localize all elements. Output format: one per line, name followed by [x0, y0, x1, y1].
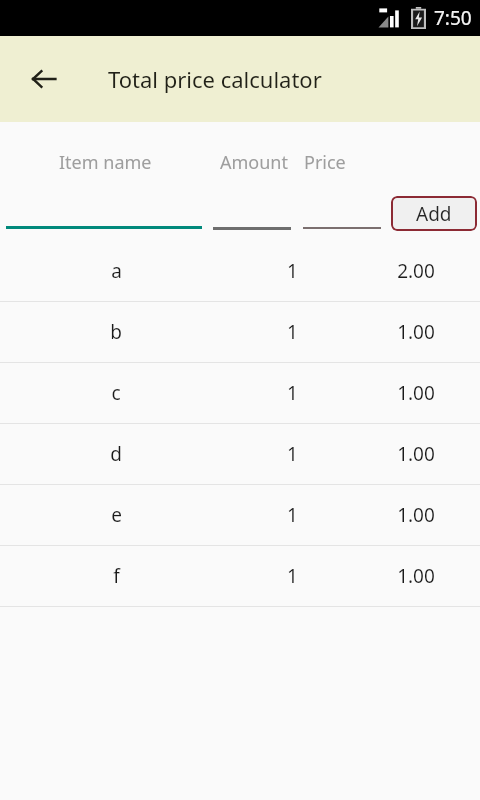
staticText: 1 [287, 319, 298, 345]
staticText: c [111, 380, 121, 406]
button[interactable]: Back [20, 55, 68, 103]
staticText: 1 [287, 258, 298, 284]
button[interactable]: c [0, 363, 480, 423]
staticText: 1.00 [397, 380, 435, 406]
staticText: d [110, 441, 122, 467]
staticText: Add [416, 201, 452, 227]
staticText: 1.00 [397, 441, 435, 467]
staticText: 1.00 [397, 319, 435, 345]
staticText: a [111, 258, 122, 284]
staticText: 1 [287, 563, 298, 589]
staticText: 1 [287, 502, 298, 528]
button[interactable]: e [0, 485, 480, 545]
staticText: 1 [287, 441, 298, 467]
staticText: Total price calculator [108, 64, 322, 94]
staticText: 1.00 [397, 502, 435, 528]
staticText: b [110, 319, 122, 345]
staticText: 1.00 [397, 563, 435, 589]
button[interactable]: Add [391, 196, 477, 231]
button[interactable]: b [0, 302, 480, 362]
staticText: Item name [59, 150, 152, 175]
staticText: 7:50 [434, 5, 472, 31]
button[interactable]: a [0, 241, 480, 301]
staticText: Price [304, 150, 346, 175]
button[interactable]: d [0, 424, 480, 484]
button[interactable]: f [0, 546, 480, 606]
staticText: f [113, 563, 120, 589]
staticText: 2.00 [397, 258, 435, 284]
staticText: Amount [220, 150, 288, 175]
staticText: 1 [287, 380, 298, 406]
staticText: e [111, 502, 122, 528]
